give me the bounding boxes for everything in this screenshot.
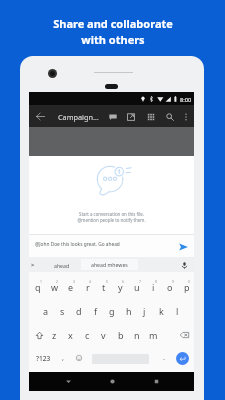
button[interactable]: r [79,276,96,298]
button[interactable]: ahead mhewes [81,259,138,270]
button[interactable]: k [153,300,170,322]
staticText: 7 [139,279,141,284]
button[interactable]: Enter [176,352,189,365]
button[interactable]: Voice input [178,259,191,272]
button[interactable]: i [145,276,162,298]
button[interactable]: q [29,276,46,298]
button[interactable]: Emoji [71,347,87,369]
staticText: 1 [40,279,42,284]
button[interactable]: t [95,276,112,298]
staticText: a [43,305,49,317]
staticText: g [109,305,115,317]
staticText: y [118,281,123,293]
staticText: 8:00 [180,96,192,104]
staticText: @John Doe this looks great. Go ahead [35,241,120,248]
staticText: n [134,329,140,341]
staticText: p [184,281,190,293]
staticText: k [159,305,164,317]
button[interactable]: Back [32,108,49,125]
staticText: q [35,281,41,293]
button[interactable]: d [70,300,87,322]
button[interactable]: l [169,300,186,322]
staticText: x [68,329,73,341]
staticText: u [134,281,140,293]
button[interactable]: Recents [149,374,163,388]
button[interactable]: w [46,276,63,298]
staticText: , [62,353,64,363]
button[interactable]: b [112,324,129,346]
button[interactable]: j [136,300,153,322]
staticText: e [68,281,74,293]
staticText: v [101,329,106,341]
staticText: Campaign… [58,112,99,122]
staticText: 9 [172,279,174,284]
button[interactable]: x [62,324,79,346]
staticText: m [149,329,158,341]
button[interactable]: v [95,324,112,346]
staticText: d [76,305,82,317]
staticText: i [152,281,155,293]
button[interactable]: Send [175,238,192,255]
button[interactable]: Shift [29,324,49,346]
staticText: o [167,281,173,293]
staticText: l [176,305,179,317]
button[interactable]: More options [177,108,194,125]
button[interactable]: m [145,324,162,346]
button[interactable]: s [54,300,71,322]
button[interactable]: Backspace [174,324,194,346]
staticText: 0 [188,279,190,284]
button[interactable]: f [87,300,104,322]
staticText: Start a conversation on this file. @ment… [29,211,194,223]
staticText: . [163,353,165,363]
button[interactable]: a [37,300,54,322]
staticText: f [94,305,98,317]
staticText: s [60,305,65,317]
button[interactable]: p [178,276,195,298]
button[interactable]: Grid view [142,108,159,125]
staticText: 6 [122,279,124,284]
staticText: r [86,281,90,293]
staticText: 3 [73,279,75,284]
staticText: z [52,329,57,341]
button[interactable]: o [161,276,178,298]
staticText: t [102,281,106,293]
staticText: ahead [54,262,70,269]
button[interactable]: . [156,347,172,369]
staticText: 4 [89,279,91,284]
button[interactable]: u [128,276,145,298]
staticText: with others [81,32,145,47]
button[interactable]: Home [105,374,119,388]
button[interactable]: Comments [104,108,121,125]
button[interactable]: h [120,300,137,322]
staticText: 2 [56,279,58,284]
staticText: h [126,305,132,317]
staticText: ?123 [36,354,51,363]
staticText: c [85,329,90,341]
button[interactable]: c [79,324,96,346]
button[interactable]: z [46,324,63,346]
button[interactable]: ?123 [32,347,54,369]
button[interactable]: Open in new window [122,108,139,125]
button[interactable]: n [128,324,145,346]
button[interactable]: y [112,276,129,298]
staticText: 8 [155,279,157,284]
staticText: ahead mhewes [91,261,128,268]
staticText: Share and collaborate [53,16,173,31]
staticText: j [143,305,146,317]
staticText: b [118,329,124,341]
staticText: 5 [106,279,108,284]
button[interactable]: g [103,300,120,322]
staticText: > [31,261,35,269]
staticText: w [51,281,59,293]
button[interactable]: Back [61,374,75,388]
button[interactable]: , [55,347,71,369]
button[interactable]: Search [161,108,178,125]
button[interactable]: e [62,276,79,298]
